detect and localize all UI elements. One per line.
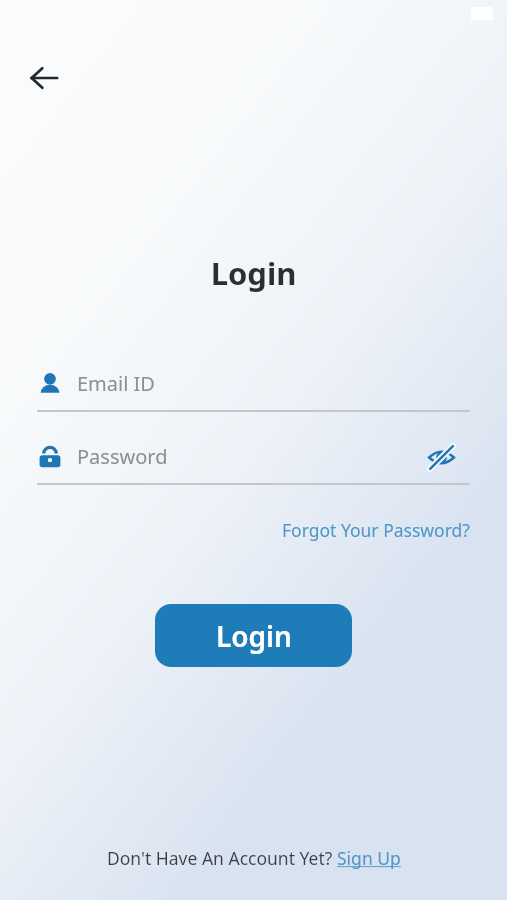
- button[interactable]: Password: [37, 433, 470, 480]
- button[interactable]: Show password: [419, 435, 463, 479]
- button[interactable]: Login: [155, 604, 352, 667]
- staticText: Forgot Your Password?: [282, 518, 470, 542]
- button[interactable]: Email ID: [37, 360, 470, 407]
- button[interactable]: Back: [22, 56, 66, 100]
- staticText: Login: [216, 617, 292, 655]
- staticText: Login: [0, 252, 507, 294]
- button[interactable]: Forgot Your Password?: [262, 512, 470, 548]
- staticText: Email ID: [77, 370, 155, 397]
- button[interactable]: Sign Up: [337, 846, 401, 870]
- staticText: Don't Have An Account Yet?: [107, 846, 337, 870]
- staticText: Password: [77, 443, 168, 470]
- staticText: Sign Up: [337, 846, 401, 870]
